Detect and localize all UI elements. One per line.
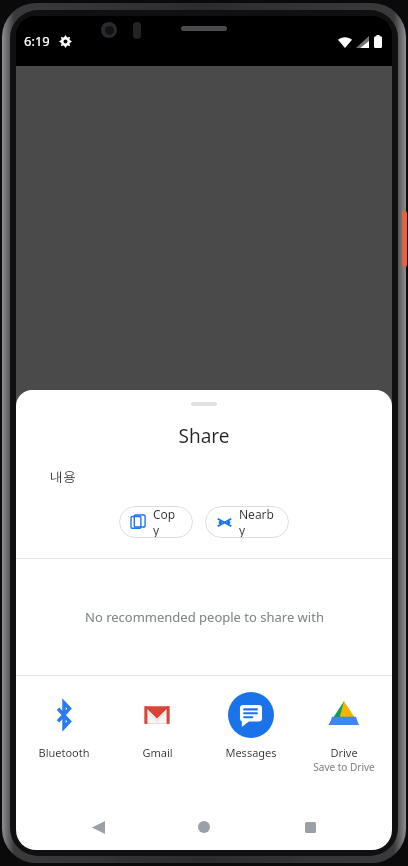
staticText: Drive xyxy=(330,745,358,760)
staticText: Share xyxy=(16,423,392,449)
button[interactable]: Messages xyxy=(205,690,297,762)
staticText: Nearby xyxy=(239,506,277,538)
staticText: Bluetooth xyxy=(38,745,90,760)
staticText: 내용 xyxy=(50,468,76,484)
button[interactable]: Nearby xyxy=(205,506,289,538)
button[interactable]: Bluetooth xyxy=(18,690,110,762)
staticText: Save to Drive xyxy=(313,760,375,774)
button[interactable]: Back xyxy=(74,804,122,850)
staticText: 6:19 xyxy=(24,32,50,50)
staticText: Copy xyxy=(153,506,181,538)
button[interactable]: Recent apps xyxy=(286,804,334,850)
button[interactable]: Home xyxy=(180,804,228,850)
staticText: Gmail xyxy=(142,745,173,760)
staticText: Messages xyxy=(225,745,277,760)
button[interactable]: Drive xyxy=(298,690,390,776)
staticText: No recommended people to share with xyxy=(85,608,324,626)
button[interactable]: Copy xyxy=(119,506,193,538)
button[interactable]: Gmail xyxy=(111,690,203,762)
